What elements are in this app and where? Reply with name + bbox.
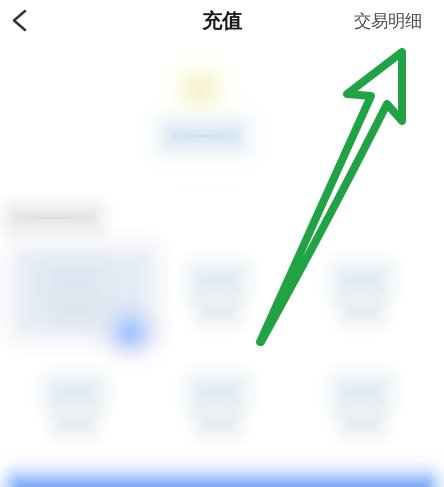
staticText: 交易明细 — [354, 10, 422, 32]
button[interactable]: Back — [0, 0, 40, 42]
staticText: 充值 — [202, 9, 242, 33]
button[interactable]: 交易明细 — [354, 0, 444, 42]
